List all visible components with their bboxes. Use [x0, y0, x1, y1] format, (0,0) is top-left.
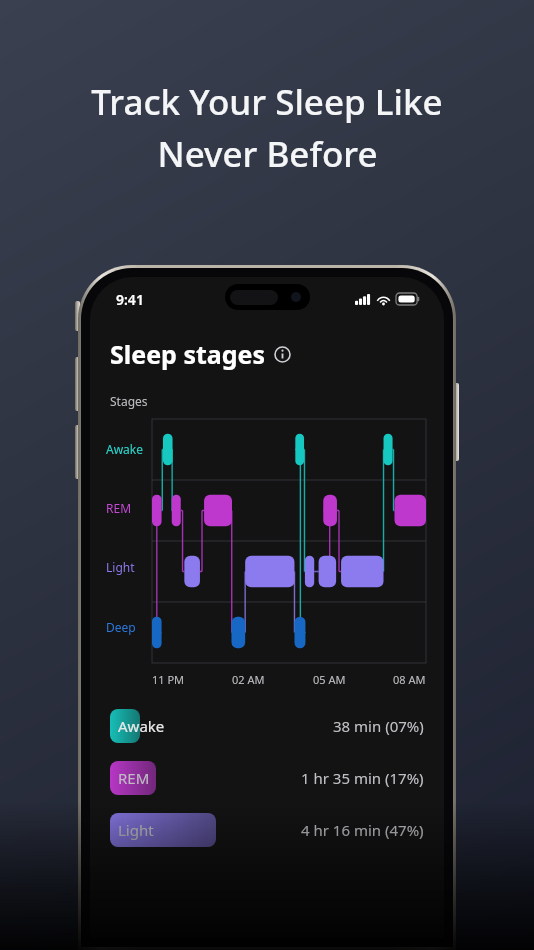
button[interactable]: Sleep stages [110, 337, 291, 371]
staticText: Stages [110, 393, 148, 409]
staticText: 05 AM [313, 672, 346, 687]
staticText: 08 AM [393, 672, 426, 687]
staticText: Sleep stages [110, 337, 266, 371]
button[interactable]: Information about sleep stages [274, 346, 291, 363]
button[interactable]: Awake [90, 709, 444, 743]
staticText: 1 hr 35 min (17%) [301, 768, 424, 788]
staticText: 11 PM [152, 672, 185, 687]
staticText: 9:41 [116, 290, 144, 309]
staticText: REM [118, 768, 150, 788]
staticText: Never Before [157, 130, 378, 178]
staticText: Awake [106, 441, 144, 457]
staticText: Awake [118, 716, 165, 736]
staticText: 02 AM [232, 672, 265, 687]
staticText: Track Your Sleep Like [91, 78, 443, 126]
staticText: Deep [106, 619, 136, 635]
staticText: REM [106, 500, 132, 516]
staticText: 4 hr 16 min (47%) [301, 820, 424, 840]
staticText: 38 min (07%) [333, 716, 424, 736]
staticText: Light [118, 820, 154, 840]
staticText: Light [106, 559, 135, 575]
button[interactable]: Light [90, 813, 444, 847]
button[interactable]: REM [90, 761, 444, 795]
